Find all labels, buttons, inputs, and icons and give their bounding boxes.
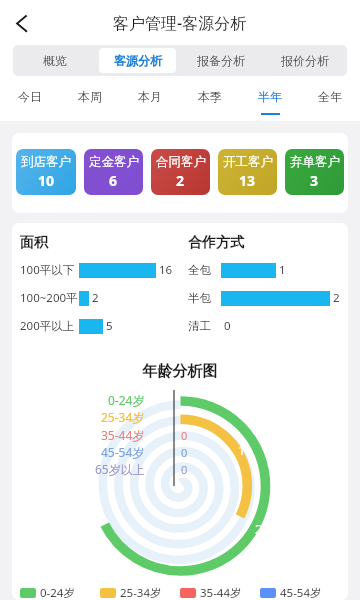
staticText: 200平以上 <box>20 318 75 334</box>
staticText: 0 <box>224 318 231 334</box>
staticText: 100~200平 <box>20 290 78 306</box>
staticText: 报价分析 <box>281 53 329 68</box>
button[interactable]: 弃单客户 <box>285 149 344 195</box>
button[interactable]: 到店客户 <box>16 149 76 195</box>
staticText: 1 <box>279 262 286 278</box>
staticText: 25-34岁 <box>101 409 145 425</box>
staticText: 开工客户 <box>223 154 273 170</box>
staticText: 到店客户 <box>21 154 71 170</box>
button[interactable]: 本周 <box>60 76 120 121</box>
button[interactable]: 0-24岁 <box>20 585 100 600</box>
staticText: 13 <box>239 171 256 190</box>
staticText: 全年 <box>318 89 342 104</box>
staticText: 16 <box>159 262 173 278</box>
staticText: 定金客户 <box>89 154 139 170</box>
staticText: 半包 <box>188 291 211 305</box>
staticText: 25-34岁 <box>120 585 162 600</box>
button[interactable]: 本季 <box>180 76 240 121</box>
staticText: 今日 <box>18 89 42 104</box>
staticText: 本月 <box>138 89 162 104</box>
button[interactable]: 25-34岁 <box>100 585 180 600</box>
button[interactable]: 本月 <box>120 76 180 121</box>
staticText: 0 <box>181 428 188 442</box>
button[interactable]: 合同客户 <box>151 149 210 195</box>
staticText: 合作方式 <box>188 234 244 252</box>
button[interactable]: 报价分析 <box>266 48 344 73</box>
staticText: 客户管理-客源分析 <box>113 12 247 34</box>
button[interactable]: Back <box>6 8 36 38</box>
staticText: 本周 <box>78 89 102 104</box>
button[interactable]: 45-54岁 <box>260 585 340 600</box>
staticText: 100平以下 <box>20 262 75 278</box>
staticText: 2 <box>92 290 99 306</box>
staticText: 半年 <box>258 89 282 104</box>
staticText: 2 <box>255 520 263 534</box>
staticText: 0 <box>181 462 188 476</box>
staticText: 5 <box>106 318 113 334</box>
staticText: 全包 <box>188 263 211 277</box>
staticText: 35-44岁 <box>101 427 145 443</box>
staticText: 0-24岁 <box>40 585 75 600</box>
button[interactable]: 客源分析 <box>99 48 176 73</box>
staticText: 2 <box>176 171 185 190</box>
staticText: 年龄分析图 <box>12 362 348 381</box>
staticText: 0 <box>181 445 188 459</box>
staticText: 报备分析 <box>197 53 245 68</box>
staticText: 3 <box>310 171 319 190</box>
staticText: 10 <box>38 171 55 190</box>
button[interactable]: 半年 <box>240 76 300 121</box>
staticText: 本季 <box>198 89 222 104</box>
staticText: 合同客户 <box>156 154 206 170</box>
staticText: 面积 <box>20 234 48 252</box>
staticText: 2 <box>333 290 340 306</box>
staticText: 35-44岁 <box>200 585 242 600</box>
button[interactable]: 35-44岁 <box>180 585 260 600</box>
button[interactable]: 开工客户 <box>218 149 277 195</box>
staticText: 45-54岁 <box>280 585 322 600</box>
button[interactable]: 今日 <box>0 76 60 121</box>
button[interactable]: 概览 <box>16 48 93 73</box>
staticText: 清工 <box>188 319 211 333</box>
staticText: 0-24岁 <box>108 392 145 408</box>
staticText: 45-54岁 <box>101 444 145 460</box>
staticText: 客源分析 <box>114 53 162 68</box>
staticText: 1 <box>238 441 246 455</box>
staticText: 概览 <box>43 53 67 68</box>
staticText: 6 <box>109 171 118 190</box>
button[interactable]: 定金客户 <box>84 149 143 195</box>
staticText: 弃单客户 <box>290 154 340 170</box>
staticText: 65岁以上 <box>95 461 145 477</box>
button[interactable]: 全年 <box>300 76 360 121</box>
button[interactable]: 报备分析 <box>182 48 260 73</box>
